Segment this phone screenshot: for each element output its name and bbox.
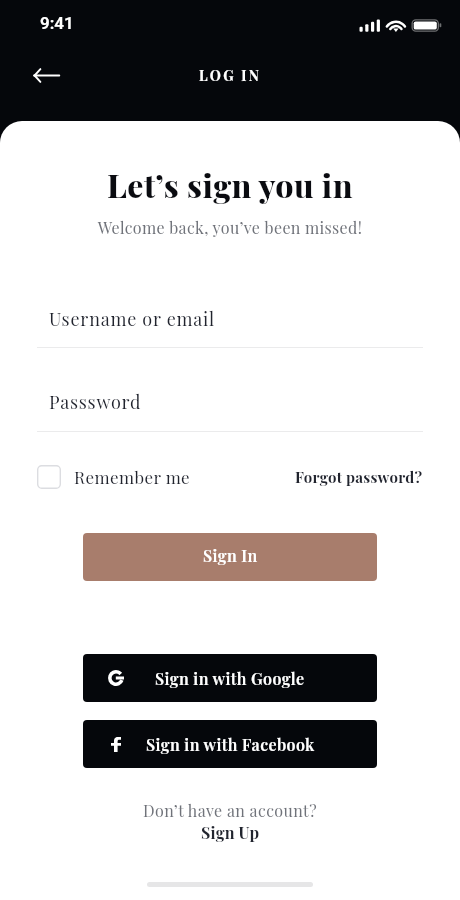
button[interactable]: Sign in with Facebook	[83, 720, 377, 768]
staticText: Sign In	[203, 545, 258, 566]
staticText: Sign in with Facebook	[146, 734, 315, 755]
staticText: 9:41	[40, 13, 74, 33]
button[interactable]: Remember me	[37, 465, 191, 489]
button[interactable]: Forgot password?	[295, 467, 423, 487]
button[interactable]: Sign in with Google	[83, 654, 377, 702]
staticText: Passsword	[49, 390, 460, 414]
staticText: LOG IN	[199, 66, 262, 85]
button[interactable]: Sign Up	[201, 822, 260, 843]
staticText: Username or email	[49, 307, 460, 331]
button[interactable]: Sign In	[83, 533, 377, 581]
staticText: Welcome back, you’ve been missed!	[0, 217, 460, 238]
staticText: Remember me	[74, 466, 191, 489]
staticText: Don’t have an account?	[0, 800, 460, 821]
staticText: Sign in with Google	[155, 668, 305, 689]
button[interactable]: Back	[24, 53, 69, 98]
staticText: Let’s sign you in	[0, 163, 460, 206]
